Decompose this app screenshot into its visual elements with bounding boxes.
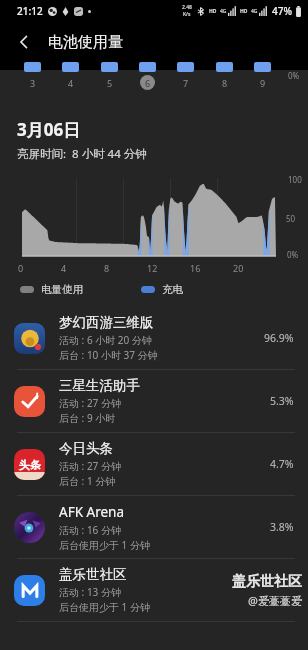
button[interactable]: 返回 [8, 26, 40, 58]
staticText: AFK Arena [59, 503, 124, 521]
staticText: 电池使用量 [48, 33, 123, 52]
staticText: 16 [190, 262, 201, 274]
staticText: 后台 : 1 分钟 [59, 474, 116, 488]
staticText: 后台 : 10 小时 37 分钟 [59, 348, 158, 362]
staticText: 4.7% [270, 457, 294, 471]
staticText: 4G [251, 8, 258, 15]
staticText: 0% [287, 249, 299, 260]
staticText: 20 [233, 262, 244, 274]
staticText: 100 [288, 174, 302, 185]
staticText: 活动 : 13 分钟 [59, 585, 121, 599]
staticText: 5.3% [270, 394, 294, 408]
staticText: 5 [107, 77, 113, 89]
button[interactable]: 7 [173, 62, 197, 90]
staticText: K/s [183, 11, 191, 18]
staticText: HD [240, 8, 248, 15]
staticText: 4 [61, 262, 67, 274]
staticText: 活动 : 16 分钟 [59, 523, 121, 537]
staticText: 4 [68, 77, 74, 89]
staticText: 12 [147, 262, 158, 274]
staticText: 9 [260, 77, 266, 89]
staticText: @爱薹薹爱 [248, 593, 302, 608]
staticText: 3.8% [270, 520, 294, 534]
staticText: 2.48 [182, 4, 192, 11]
staticText: 活动 : 27 分钟 [59, 396, 121, 410]
staticText: 0% [288, 70, 300, 81]
staticText: 8 [222, 77, 228, 89]
staticText: 4G [220, 8, 227, 15]
staticText: 活动 : 27 分钟 [59, 459, 121, 473]
staticText: 7 [183, 77, 189, 89]
staticText: 后台使用少于 1 分钟 [59, 538, 150, 552]
staticText: 50 [286, 213, 296, 224]
staticText: 0 [18, 262, 24, 274]
button[interactable]: 三星生活助手 [0, 370, 308, 432]
button[interactable]: 4 [58, 62, 82, 90]
button[interactable]: 5 [97, 62, 121, 90]
button[interactable]: AFK Arena [0, 496, 308, 558]
button[interactable]: 头条 [0, 433, 308, 495]
staticText: HD [209, 8, 217, 15]
button[interactable]: 3 [20, 62, 44, 90]
staticText: 后台使用少于 1 分钟 [59, 600, 150, 614]
staticText: 21:12 [17, 4, 43, 18]
staticText: 后台 : 9 小时 [59, 411, 116, 425]
staticText: 今日头条 [59, 440, 113, 457]
button[interactable]: 6 [135, 62, 159, 90]
button[interactable]: 8 [212, 62, 236, 90]
button[interactable]: 盖乐世社区 [0, 559, 308, 621]
staticText: 盖乐世社区 [59, 566, 127, 583]
staticText: 梦幻西游三维版 [59, 314, 154, 331]
button[interactable]: 梦幻西游三维版 [0, 307, 308, 369]
button[interactable]: 9 [250, 62, 274, 90]
staticText: 三星生活助手 [59, 377, 140, 394]
staticText: 充电 [162, 283, 183, 296]
staticText: 头条 [19, 458, 41, 472]
staticText: 盖乐世社区 [232, 573, 302, 591]
staticText: 6 [145, 77, 151, 89]
staticText: 96.9% [264, 331, 294, 345]
staticText: 47% [272, 4, 292, 18]
staticText: 8 [104, 262, 110, 274]
staticText: 3 [30, 77, 36, 89]
staticText: 3月06日 [17, 118, 81, 141]
staticText: 活动 : 6 小时 20 分钟 [59, 333, 152, 347]
staticText: 电量使用 [41, 283, 83, 296]
staticText: 亮屏时间: 8 小时 44 分钟 [17, 146, 147, 162]
